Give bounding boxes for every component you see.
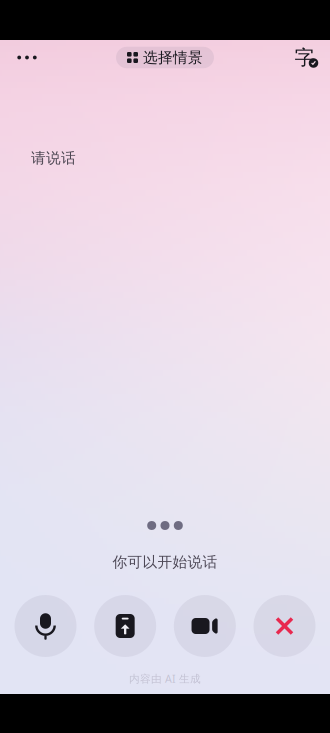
button[interactable]: More options xyxy=(6,42,48,72)
staticText: 字 xyxy=(294,45,314,70)
button[interactable]: Microphone xyxy=(14,595,76,657)
staticText: 内容由 AI 生成 xyxy=(129,671,201,686)
button[interactable]: Video call xyxy=(174,595,236,657)
staticText: 请说话 xyxy=(31,149,76,167)
button[interactable]: 选择情景 xyxy=(116,47,214,68)
button[interactable]: Toggle captions xyxy=(287,42,327,72)
staticText: 你可以开始说话 xyxy=(112,553,217,571)
button[interactable]: End session xyxy=(253,595,315,657)
button[interactable]: Upload file xyxy=(94,595,156,657)
staticText: 选择情景 xyxy=(143,48,203,66)
